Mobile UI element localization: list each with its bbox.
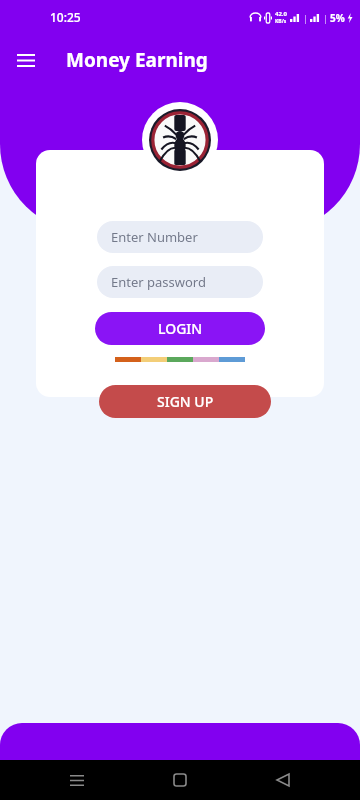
staticText: | [323,12,328,24]
staticText: Enter Number [111,228,198,246]
button[interactable]: LOGIN [95,312,265,345]
staticText: Money Earning [66,47,208,73]
staticText: 5% [330,11,345,25]
button[interactable]: Enter password [97,266,263,298]
staticText: 10:25 [50,9,81,25]
button[interactable]: Home [163,763,197,797]
staticText: 42.0 [275,10,287,18]
button[interactable]: SIGN UP [99,385,271,418]
staticText: | [303,12,308,24]
staticText: Enter password [111,273,206,291]
button[interactable]: Enter Number [97,221,263,253]
staticText: LOGIN [158,319,203,338]
button[interactable]: Open navigation menu [4,38,48,82]
staticText: SIGN UP [157,392,214,411]
button[interactable]: Back [266,763,300,797]
button[interactable]: Recent apps [60,763,94,797]
button[interactable]: Promotional banner [0,723,360,760]
staticText: KB/s [275,18,287,25]
